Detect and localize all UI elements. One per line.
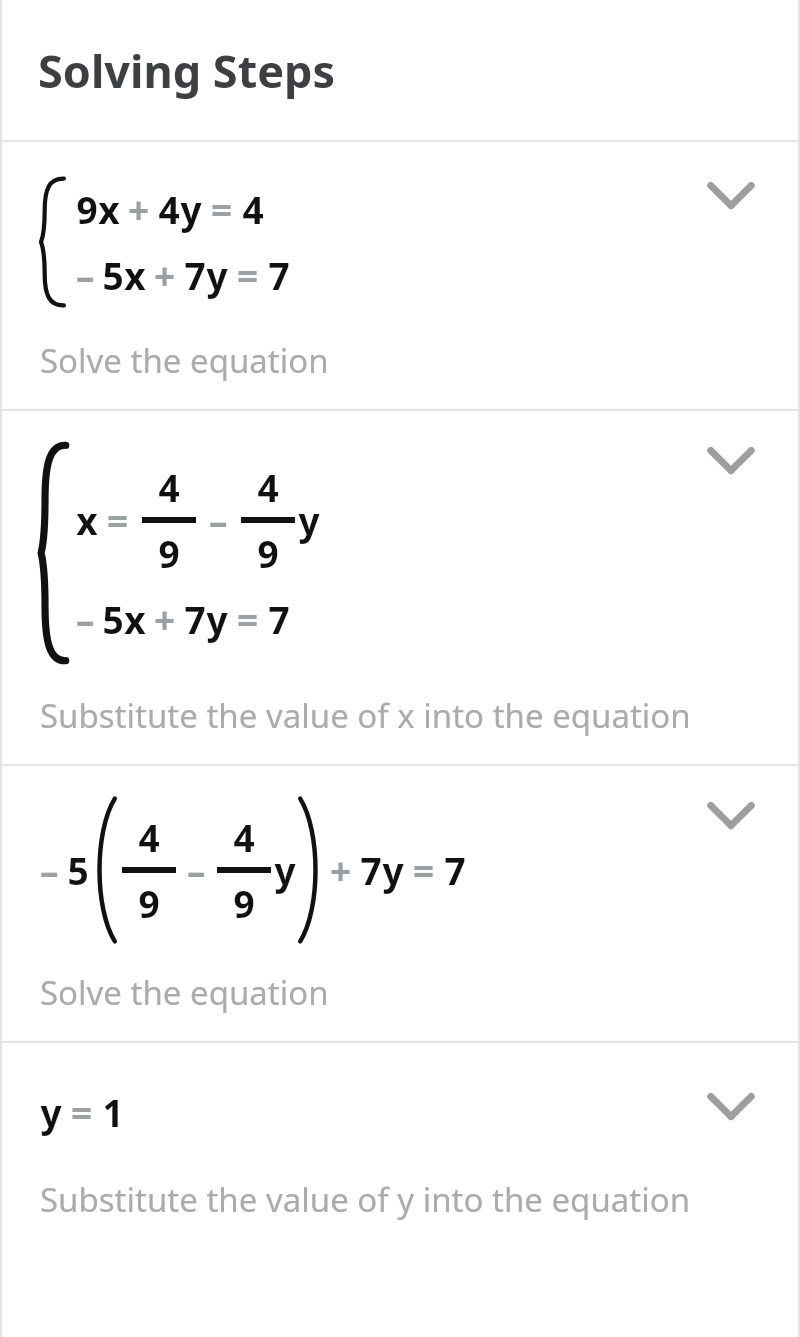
button[interactable]: Expand step — [694, 1069, 768, 1143]
staticText: 7 — [444, 845, 466, 895]
staticText: 4 — [242, 184, 264, 234]
button[interactable]: Solving Steps — [0, 0, 800, 140]
staticText: 4 — [233, 812, 255, 862]
staticText: 7 — [184, 250, 206, 300]
staticText: 4 — [138, 812, 160, 862]
staticText: y — [206, 594, 228, 644]
staticText: 7 — [184, 594, 206, 644]
staticText: 5 — [67, 845, 89, 895]
staticText: + — [154, 250, 176, 300]
staticText: y — [206, 250, 228, 300]
button[interactable]: Expand step — [694, 158, 768, 232]
staticText: – — [40, 845, 59, 895]
staticText: 5 — [102, 250, 124, 300]
staticText: 7 — [360, 845, 382, 895]
staticText: 4 — [158, 462, 180, 512]
button[interactable]: y — [0, 1043, 800, 1248]
staticText: Substitute the value of y into the equat… — [40, 1177, 691, 1222]
staticText: 9 — [233, 878, 255, 928]
staticText: = — [211, 184, 233, 234]
staticText: = — [237, 594, 259, 644]
staticText: + — [128, 184, 150, 234]
staticText: – — [187, 845, 206, 895]
staticText: y — [274, 845, 296, 895]
button[interactable]: – — [0, 766, 800, 1041]
staticText: x — [76, 495, 98, 545]
staticText: 7 — [268, 250, 290, 300]
staticText: 9 — [257, 528, 279, 578]
staticText: y — [382, 845, 404, 895]
staticText: – — [76, 594, 95, 644]
staticText: = — [413, 845, 435, 895]
staticText: 4 — [158, 184, 180, 234]
staticText: y — [298, 495, 320, 545]
staticText: = — [71, 1087, 93, 1137]
button[interactable]: 9 — [0, 142, 800, 409]
staticText: 5 — [102, 594, 124, 644]
staticText: y — [180, 184, 202, 234]
staticText: 9 — [76, 184, 98, 234]
staticText: – — [76, 250, 95, 300]
button[interactable]: x — [0, 411, 800, 764]
staticText: Solve the equation — [40, 338, 329, 383]
staticText: Solving Steps — [38, 40, 336, 101]
staticText: + — [154, 594, 176, 644]
staticText: 1 — [102, 1087, 124, 1137]
staticText: 9 — [138, 878, 160, 928]
button[interactable]: Expand step — [694, 778, 768, 852]
staticText: Solve the equation — [40, 970, 329, 1015]
staticText: y — [40, 1087, 62, 1137]
staticText: = — [237, 250, 259, 300]
staticText: = — [107, 495, 129, 545]
staticText: 7 — [268, 594, 290, 644]
staticText: x — [98, 184, 120, 234]
button[interactable]: Expand step — [694, 423, 768, 497]
staticText: – — [209, 495, 228, 545]
staticText: Substitute the value of x into the equat… — [40, 693, 691, 738]
staticText: + — [330, 845, 352, 895]
staticText: x — [124, 250, 146, 300]
staticText: 4 — [257, 462, 279, 512]
staticText: 9 — [158, 528, 180, 578]
staticText: x — [124, 594, 146, 644]
